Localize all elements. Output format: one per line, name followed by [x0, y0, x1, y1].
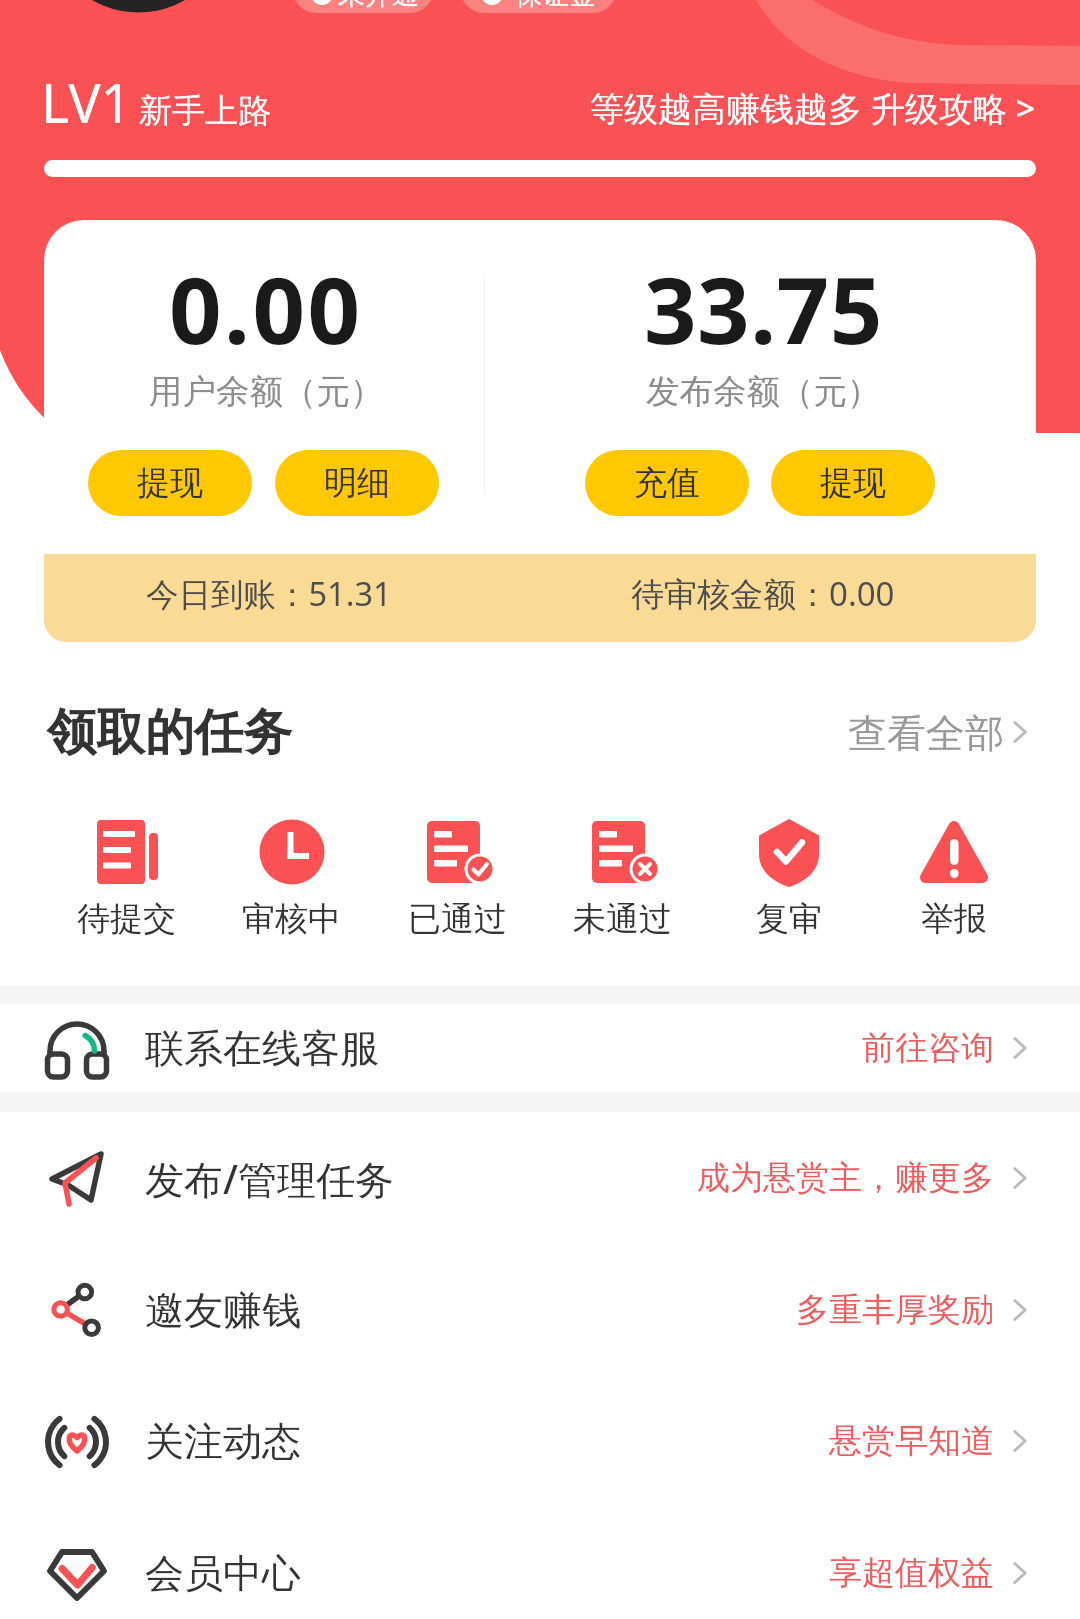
staticText: 新手上路 [139, 90, 271, 132]
button[interactable]: 发布/管理任务 [0, 1112, 1080, 1244]
button[interactable]: 未通过 [540, 800, 705, 940]
staticText: 悬赏早知道 [829, 1420, 994, 1462]
staticText: 前往咨询 [862, 1027, 994, 1069]
staticText: 享超值权益 [829, 1552, 994, 1594]
button[interactable]: 提现 [771, 450, 935, 516]
staticText: 33.75 [644, 246, 883, 371]
button[interactable]: 待提交 [44, 800, 209, 940]
button[interactable]: 明细 [275, 450, 439, 516]
button[interactable]: 邀友赚钱 [0, 1244, 1080, 1376]
staticText: LV1 [41, 65, 132, 139]
staticText: 未通过 [573, 898, 672, 940]
button[interactable]: 联系在线客服 [0, 1004, 1080, 1092]
staticText: 举报 [921, 898, 987, 940]
staticText: 提现 [137, 462, 203, 504]
button[interactable]: Profile avatar [46, 0, 231, 13]
button[interactable]: 充值 [585, 450, 749, 516]
staticText: 领取的任务 [47, 702, 292, 764]
staticText: 多重丰厚奖励 [796, 1289, 994, 1331]
button[interactable]: 查看全部 [848, 700, 1036, 766]
button[interactable]: 举报 [871, 800, 1036, 940]
staticText: 会员中心 [145, 1549, 301, 1598]
staticText: 待审核金额：0.00 [631, 571, 895, 616]
button[interactable] [460, 0, 617, 13]
staticText: 发布/管理任务 [145, 1152, 395, 1205]
staticText: 等级越高赚钱越多 升级攻略 > [590, 85, 1036, 131]
staticText: 用户余额（元） [149, 371, 384, 413]
button[interactable] [292, 0, 434, 13]
staticText: 充值 [634, 462, 700, 504]
staticText: 待提交 [77, 898, 176, 940]
button[interactable]: 关注动态 [0, 1375, 1080, 1507]
button[interactable]: 等级越高赚钱越多 升级攻略 > [560, 78, 1036, 138]
button[interactable]: 会员中心 [0, 1507, 1080, 1619]
staticText: 审核中 [242, 898, 341, 940]
staticText: 已通过 [408, 898, 507, 940]
staticText: 提现 [820, 462, 886, 504]
staticText: 查看全部 [848, 709, 1004, 758]
staticText: 明细 [324, 462, 390, 504]
button[interactable]: 提现 [88, 450, 252, 516]
button[interactable]: 审核中 [209, 800, 374, 940]
button[interactable]: 已通过 [375, 800, 540, 940]
staticText: 发布余额（元） [646, 371, 881, 413]
staticText: 未开通 [338, 0, 419, 12]
button[interactable]: 复审 [706, 800, 871, 940]
staticText: 关注动态 [145, 1417, 301, 1466]
staticText: 0.00 [169, 246, 363, 371]
staticText: 今日到账：51.31 [146, 571, 392, 615]
staticText: 邀友赚钱 [145, 1286, 301, 1335]
staticText: 成为悬赏主，赚更多 [697, 1157, 994, 1199]
staticText: 联系在线客服 [145, 1024, 379, 1073]
staticText: 复审 [756, 898, 822, 940]
staticText: 保证金 [515, 0, 596, 12]
